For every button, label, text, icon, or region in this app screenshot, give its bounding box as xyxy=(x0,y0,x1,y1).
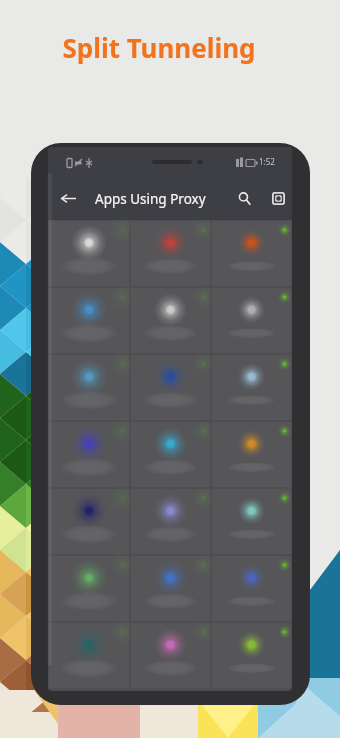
button[interactable]: Search xyxy=(231,185,257,211)
button[interactable] xyxy=(212,556,291,621)
button[interactable]: Select apps xyxy=(265,185,291,211)
staticText: Apps Using Proxy xyxy=(95,190,206,208)
button[interactable] xyxy=(131,556,210,621)
staticText: Split Tunneling xyxy=(0,30,329,65)
button[interactable] xyxy=(212,221,291,286)
button[interactable]: Back xyxy=(55,185,81,211)
button[interactable] xyxy=(131,623,210,688)
button[interactable] xyxy=(131,288,210,353)
button[interactable] xyxy=(131,489,210,554)
button[interactable] xyxy=(212,623,291,688)
button[interactable] xyxy=(49,556,129,621)
button[interactable] xyxy=(131,422,210,487)
button[interactable] xyxy=(49,288,129,353)
button[interactable] xyxy=(49,221,129,286)
button[interactable] xyxy=(49,355,129,420)
button[interactable] xyxy=(131,355,210,420)
button[interactable] xyxy=(212,422,291,487)
button[interactable] xyxy=(49,489,129,554)
button[interactable] xyxy=(212,288,291,353)
button[interactable] xyxy=(49,623,129,688)
button[interactable] xyxy=(212,355,291,420)
button[interactable] xyxy=(212,489,291,554)
staticText: 1:52 xyxy=(259,156,275,167)
button[interactable] xyxy=(131,221,210,286)
button[interactable] xyxy=(49,422,129,487)
